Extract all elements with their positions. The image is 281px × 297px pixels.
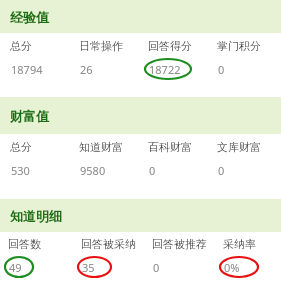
- staticText: 掌门积分: [217, 39, 261, 53]
- button[interactable]: 采纳率: [223, 237, 281, 277]
- button[interactable]: 回答被采纳: [81, 237, 152, 277]
- button[interactable]: 总分: [10, 140, 79, 180]
- staticText: 百科财富: [148, 140, 192, 154]
- staticText: 0: [218, 62, 225, 77]
- staticText: 49: [9, 260, 22, 275]
- staticText: 26: [80, 62, 93, 77]
- staticText: 18794: [11, 62, 43, 77]
- staticText: 文库财富: [217, 140, 261, 154]
- staticText: 0: [153, 260, 160, 275]
- button[interactable]: 财富值: [0, 97, 281, 134]
- staticText: 回答被采纳: [81, 237, 136, 251]
- staticText: 知道财富: [79, 140, 123, 154]
- staticText: 0: [149, 163, 156, 178]
- button[interactable]: 百科财富: [148, 140, 217, 180]
- button[interactable]: 回答数: [8, 237, 81, 277]
- button[interactable]: 总分: [10, 39, 79, 79]
- staticText: 0%: [224, 260, 240, 275]
- staticText: 总分: [10, 140, 32, 154]
- staticText: 采纳率: [223, 237, 256, 251]
- staticText: 9580: [80, 163, 106, 178]
- button[interactable]: 掌门积分: [217, 39, 281, 79]
- staticText: 0: [218, 163, 225, 178]
- staticText: 18722: [149, 62, 181, 77]
- staticText: 回答得分: [148, 39, 192, 53]
- button[interactable]: 日常操作: [79, 39, 148, 79]
- staticText: 知道明细: [10, 208, 62, 224]
- button[interactable]: 回答被推荐: [152, 237, 223, 277]
- staticText: 回答被推荐: [152, 237, 207, 251]
- staticText: 总分: [10, 39, 32, 53]
- staticText: 经验值: [10, 9, 49, 25]
- button[interactable]: 知道明细: [0, 199, 281, 232]
- button[interactable]: 回答得分: [148, 39, 217, 79]
- staticText: 日常操作: [79, 39, 123, 53]
- button[interactable]: 文库财富: [217, 140, 281, 180]
- staticText: 财富值: [10, 108, 49, 124]
- button[interactable]: 知道财富: [79, 140, 148, 180]
- staticText: 回答数: [8, 237, 41, 251]
- button[interactable]: 经验值: [0, 0, 281, 33]
- staticText: 530: [11, 163, 30, 178]
- staticText: 35: [82, 260, 95, 275]
